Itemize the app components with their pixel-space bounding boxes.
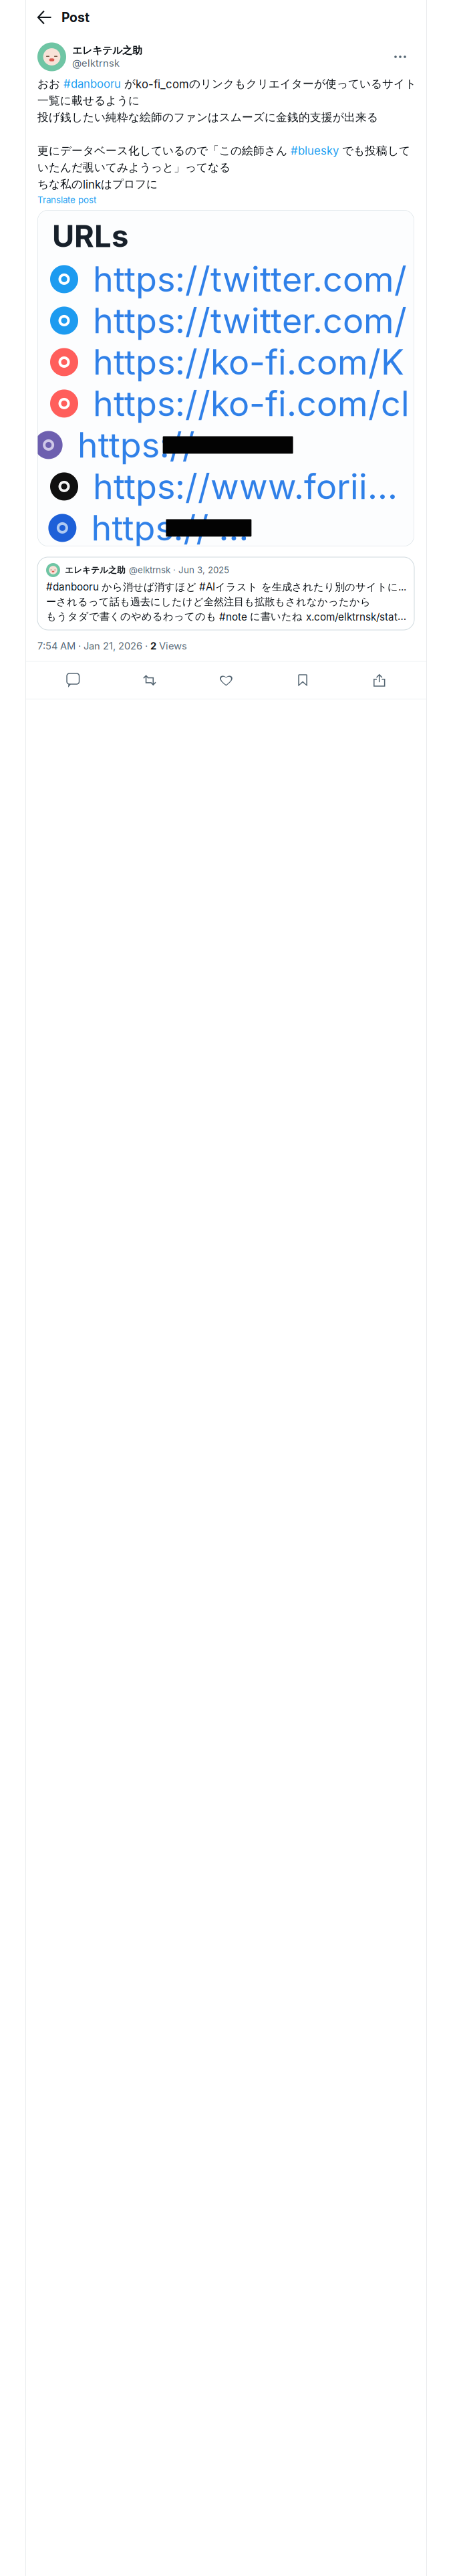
staticText: #danbooru [63,77,121,91]
staticText: おお [37,77,63,91]
staticText: ちな私のlinkはプロフに [37,177,158,191]
button[interactable]: Reply [35,662,111,699]
staticText: https://www.foriio.c [93,465,414,508]
staticText: がko-fi_comのリンクもクリエイターが使っているサイト [121,77,416,91]
staticText: ーされるって話も過去にしたけど全然注目も拡散もされなかったから [46,595,371,608]
button[interactable]: More [386,42,415,72]
staticText: もうタダで書くのやめるわってのも #note に書いたね x.com/elktr… [46,610,409,623]
staticText: #bluesky [291,144,339,158]
staticText: #danbooru から消せば消すほど #AIイラスト を生成されたり別のサイト… [46,581,409,594]
staticText: @elktrnsk · Jun 3, 2025 [129,565,229,575]
staticText: 更にデータベース化しているので「この絵師さん [37,144,291,158]
staticText: でも投稿して [339,144,410,158]
staticText: https://ko-fi.com/K [93,341,404,383]
staticText: URLs [52,218,128,254]
staticText: エレキテル之助 [65,565,126,575]
staticText: https:// straw [91,507,251,549]
button[interactable]: Profile picture [37,42,66,71]
staticText: @elktrnsk [72,57,120,69]
button[interactable]: Like [188,662,264,699]
staticText: https://twitter.com/ [93,258,407,300]
staticText: https://twitter.com/ [93,300,407,342]
button[interactable]: Translate post [26,193,426,210]
button[interactable]: Share [341,662,418,699]
staticText: 7:54 AM · Jan 21, 2026 · [37,640,150,652]
staticText: Translate post [37,195,96,205]
staticText: 一覧に載せるように [37,94,140,108]
staticText: Views [156,640,187,652]
button[interactable]: Back [26,0,61,35]
button[interactable]: Bookmark [264,662,341,699]
staticText: https:// [77,424,215,466]
staticText: Post [61,10,90,25]
staticText: 投げ銭したい純粋な絵師のファンはスムーズに金銭的支援が出来る [37,110,378,124]
staticText: いたんだ覗いてみようっと」ってなる [37,160,231,175]
button[interactable]: Repost [111,662,188,699]
staticText: https://ko-fi.com/cl [93,383,410,425]
staticText: エレキテル之助 [72,44,142,57]
staticText: 2 [150,640,156,652]
